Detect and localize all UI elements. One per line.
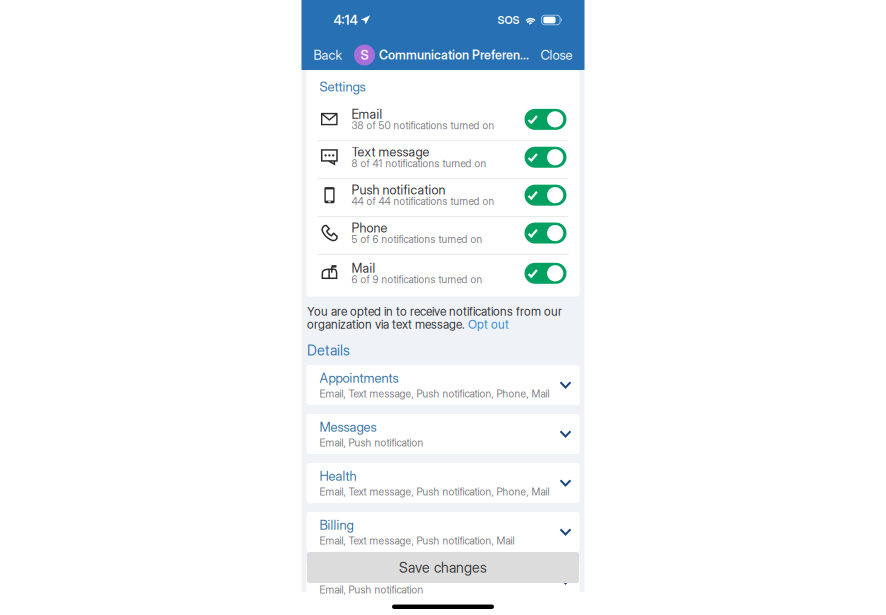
button[interactable]: Appointments bbox=[306, 365, 579, 405]
staticText: 38 of 50 notifications turned on bbox=[351, 119, 494, 132]
staticText: Mail bbox=[351, 260, 375, 276]
button[interactable]: Text message bbox=[306, 141, 579, 178]
staticText: Close bbox=[540, 47, 572, 63]
button[interactable]: Visits bbox=[306, 561, 579, 601]
button[interactable]: Email bbox=[306, 103, 579, 140]
staticText: You are opted in to receive notification… bbox=[307, 304, 562, 319]
staticText: Appointments bbox=[319, 370, 398, 386]
button[interactable]: Health bbox=[306, 463, 579, 503]
staticText: SOS bbox=[498, 13, 520, 27]
staticText: Phone bbox=[351, 220, 387, 235]
button[interactable]: Messages bbox=[306, 414, 579, 454]
button[interactable]: Back bbox=[313, 47, 348, 63]
staticText: Push notification bbox=[351, 182, 445, 197]
staticText: Messages bbox=[319, 419, 376, 435]
staticText: Communication Preferen... bbox=[379, 47, 529, 62]
staticText: Health bbox=[319, 468, 356, 484]
button[interactable]: Billing bbox=[306, 512, 579, 552]
staticText: 44 of 44 notifications turned on bbox=[351, 195, 494, 208]
staticText: 8 of 41 notifications turned on bbox=[351, 157, 486, 170]
button[interactable]: Mail bbox=[306, 255, 579, 297]
staticText: organization via text message. bbox=[307, 317, 468, 332]
button[interactable]: Opt out bbox=[468, 317, 509, 332]
staticText: Email, Text message, Push notification, … bbox=[319, 387, 549, 400]
staticText: Email, Text message, Push notification, … bbox=[319, 534, 514, 547]
staticText: S bbox=[360, 47, 368, 63]
staticText: 5 of 6 notifications turned on bbox=[351, 233, 482, 245]
staticText: 6 of 9 notifications turned on bbox=[351, 273, 482, 286]
staticText: Text message bbox=[351, 144, 429, 160]
staticText: 4:14 bbox=[333, 12, 357, 28]
staticText: Details bbox=[307, 342, 350, 359]
staticText: Email, Push notification bbox=[319, 583, 423, 596]
button[interactable]: Close bbox=[534, 47, 572, 63]
staticText: Billing bbox=[319, 517, 353, 533]
staticText: Save changes bbox=[399, 559, 487, 576]
staticText: Settings bbox=[319, 79, 365, 95]
button[interactable]: Phone bbox=[306, 217, 579, 254]
button[interactable]: Save changes bbox=[307, 552, 579, 583]
staticText: Email, Text message, Push notification, … bbox=[319, 485, 549, 498]
staticText: Back bbox=[313, 47, 342, 63]
staticText: Email bbox=[351, 106, 382, 122]
button[interactable]: Push notification bbox=[306, 179, 579, 216]
staticText: Email, Push notification bbox=[319, 436, 423, 449]
staticText: Opt out bbox=[468, 317, 509, 332]
